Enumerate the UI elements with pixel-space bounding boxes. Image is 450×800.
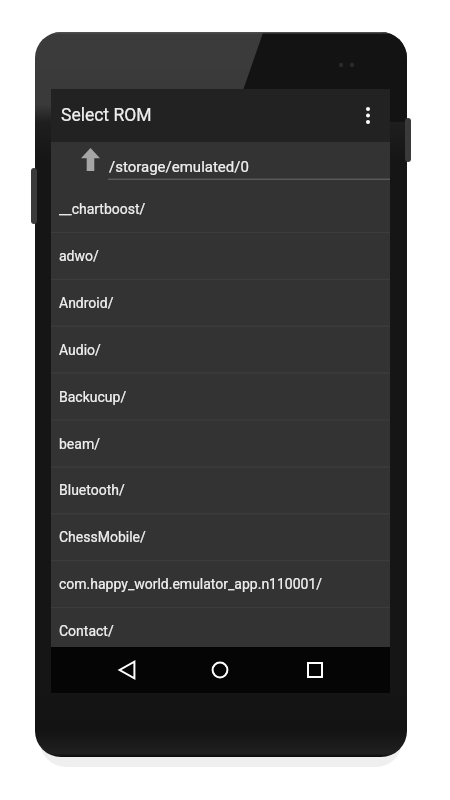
staticText: Backucup/ (59, 389, 127, 405)
staticText: Bluetooth/ (59, 482, 125, 498)
staticText: Select ROM (61, 105, 152, 126)
staticText: adwo/ (59, 248, 99, 264)
staticText: ChessMobile/ (59, 529, 146, 545)
button[interactable]: Bluetooth/ (51, 466, 390, 513)
button[interactable]: Backucup/ (51, 373, 390, 420)
button[interactable]: Android/ (51, 279, 390, 326)
button[interactable]: com.happy_world.emulator_app.n110001/ (51, 560, 390, 607)
button[interactable]: Home (195, 647, 245, 693)
button[interactable]: Back (102, 647, 152, 693)
staticText: Contact/ (59, 623, 114, 639)
button[interactable]: More options (346, 89, 390, 142)
button[interactable]: ChessMobile/ (51, 513, 390, 560)
button[interactable]: Recents (290, 647, 340, 693)
staticText: Android/ (59, 295, 114, 311)
button[interactable]: beam/ (51, 420, 390, 467)
staticText: com.happy_world.emulator_app.n110001/ (59, 576, 323, 592)
button[interactable]: adwo/ (51, 232, 390, 279)
button[interactable]: /storage/emulated/0 (51, 142, 390, 185)
staticText: /storage/emulated/0 (109, 158, 249, 176)
button[interactable]: Contact/ (51, 607, 390, 654)
button[interactable]: __chartboost/ (51, 185, 390, 232)
staticText: beam/ (59, 436, 100, 452)
staticText: __chartboost/ (59, 201, 146, 217)
staticText: Audio/ (59, 342, 101, 358)
button[interactable]: Audio/ (51, 326, 390, 373)
